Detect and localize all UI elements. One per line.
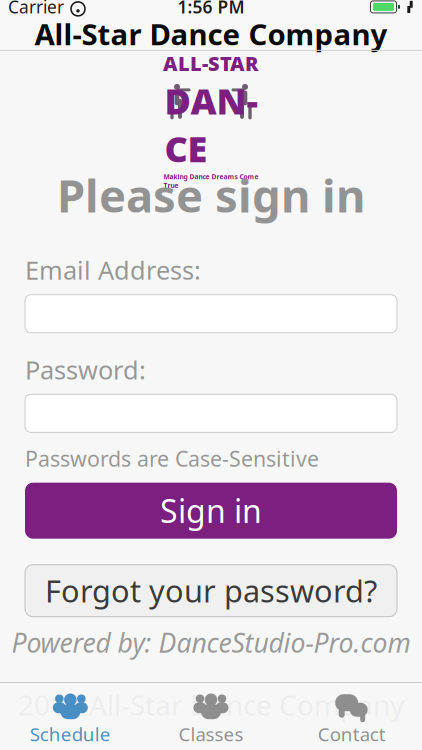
- button[interactable]: Sign in: [25, 483, 397, 539]
- staticText: Password:: [25, 353, 146, 386]
- staticText: Classes: [178, 722, 243, 746]
- staticText: All-Star Dance Company: [34, 14, 387, 53]
- staticText: Contact: [318, 722, 386, 746]
- button[interactable]: Schedule: [0, 684, 141, 750]
- staticText: Powered by: DanceStudio-Pro.com: [11, 625, 410, 660]
- staticText: 2017 All-Star Dance Company: [18, 686, 404, 723]
- staticText: 1:56 PM: [177, 0, 244, 18]
- button[interactable]: Classes: [141, 684, 281, 750]
- staticText: DANCE: [164, 76, 257, 172]
- staticText: Sign in: [160, 489, 262, 532]
- button[interactable]: Contact: [281, 684, 422, 750]
- staticText: Email Address:: [25, 253, 201, 287]
- staticText: Passwords are Case-Sensitive: [25, 444, 319, 473]
- staticText: Schedule: [30, 722, 111, 746]
- staticText: Please sign in: [57, 165, 365, 225]
- button[interactable]: Forgot your password?: [25, 565, 397, 617]
- staticText: ALL-STAR: [163, 50, 259, 76]
- staticText: Making Dance Dreams Come True: [163, 172, 258, 190]
- staticText: Carrier: [8, 0, 64, 18]
- staticText: Forgot your password?: [45, 570, 377, 611]
